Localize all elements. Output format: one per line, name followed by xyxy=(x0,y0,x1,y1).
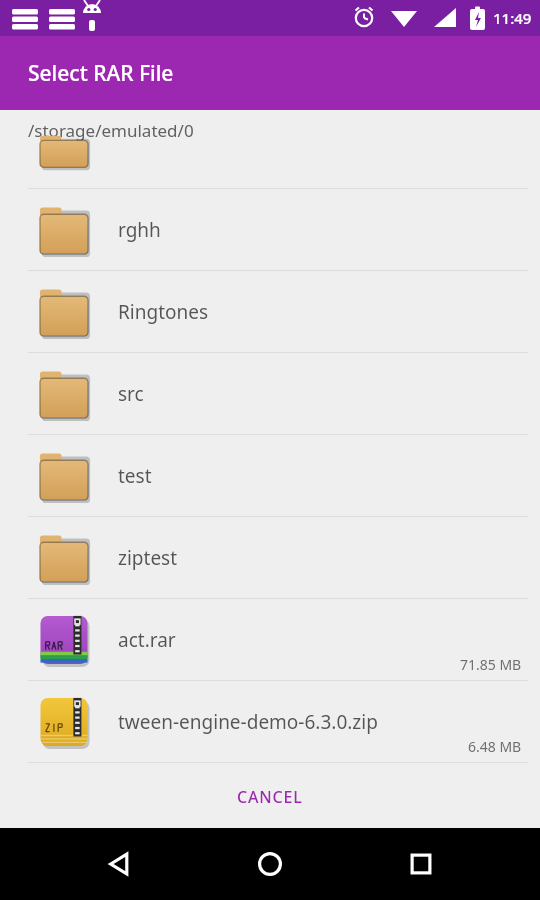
staticText: CANCEL xyxy=(237,786,303,808)
button[interactable] xyxy=(0,150,540,188)
staticText: 6.48 MB xyxy=(468,737,522,756)
staticText: tween-engine-demo-6.3.0.zip xyxy=(118,709,378,735)
staticText: /storage/emulated/0 xyxy=(28,119,194,142)
button[interactable]: Recent apps xyxy=(389,832,453,896)
staticText: Ringtones xyxy=(118,299,209,325)
staticText: Select RAR File xyxy=(28,59,174,88)
button[interactable]: tween-engine-demo-6.3.0.zip xyxy=(0,681,540,762)
staticText: ziptest xyxy=(118,545,178,571)
button[interactable]: test xyxy=(0,435,540,516)
staticText: 71.85 MB xyxy=(460,655,522,674)
button[interactable]: Ringtones xyxy=(0,271,540,352)
staticText: act.rar xyxy=(118,627,176,653)
button[interactable]: CANCEL xyxy=(221,778,319,816)
button[interactable]: src xyxy=(0,353,540,434)
button[interactable]: act.rar xyxy=(0,599,540,680)
staticText: src xyxy=(118,381,144,407)
button[interactable]: rghh xyxy=(0,189,540,270)
staticText: rghh xyxy=(118,217,161,243)
button[interactable]: ziptest xyxy=(0,517,540,598)
button[interactable]: Home xyxy=(238,832,302,896)
button[interactable]: Back xyxy=(87,832,151,896)
staticText: test xyxy=(118,463,152,489)
staticText: 11:49 xyxy=(493,8,532,28)
